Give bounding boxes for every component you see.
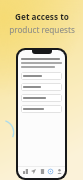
button[interactable] bbox=[21, 83, 62, 91]
button[interactable]: Profile bbox=[55, 167, 63, 175]
button[interactable]: Insights bbox=[29, 167, 37, 175]
button[interactable] bbox=[21, 72, 62, 80]
staticText: Get access to bbox=[15, 11, 69, 22]
button[interactable] bbox=[21, 105, 62, 113]
button[interactable]: Discover bbox=[46, 167, 54, 175]
button[interactable]: Requests bbox=[38, 167, 46, 175]
button[interactable]: Home bbox=[21, 167, 29, 175]
staticText: product requests bbox=[9, 24, 75, 35]
button[interactable] bbox=[21, 94, 62, 102]
